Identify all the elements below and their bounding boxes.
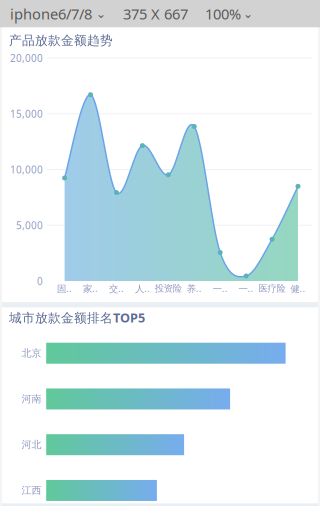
staticText: iphone6/7/8: [10, 4, 92, 24]
staticText: 河北: [21, 438, 41, 451]
staticText: 城市放款金额排名TOP5: [9, 309, 145, 326]
staticText: 产品放款金额趋势: [9, 32, 113, 48]
staticText: 投资险: [155, 283, 182, 294]
staticText: 家..: [83, 282, 98, 295]
staticText: 医疗险: [258, 283, 285, 294]
staticText: 江西: [21, 484, 41, 497]
staticText: 375 X 667: [123, 4, 188, 24]
staticText: 北京: [21, 347, 41, 359]
staticText: 10,000: [10, 163, 43, 176]
staticText: 一..: [213, 282, 228, 295]
staticText: 5,000: [16, 218, 43, 232]
staticText: 交..: [109, 282, 124, 295]
staticText: 20,000: [10, 51, 43, 65]
staticText: 15,000: [10, 107, 43, 120]
staticText: 100%: [205, 4, 241, 24]
staticText: 一..: [239, 282, 254, 295]
staticText: 健..: [290, 282, 305, 295]
button[interactable]: iphone6/7/8: [10, 4, 106, 24]
staticText: ⌄: [96, 7, 106, 21]
staticText: 河南: [21, 393, 41, 405]
staticText: 固..: [57, 282, 72, 295]
staticText: 养..: [187, 282, 202, 295]
staticText: ⌄: [243, 7, 253, 21]
button[interactable]: 100%: [188, 4, 253, 24]
staticText: 人..: [135, 282, 150, 295]
staticText: 0: [37, 274, 43, 288]
